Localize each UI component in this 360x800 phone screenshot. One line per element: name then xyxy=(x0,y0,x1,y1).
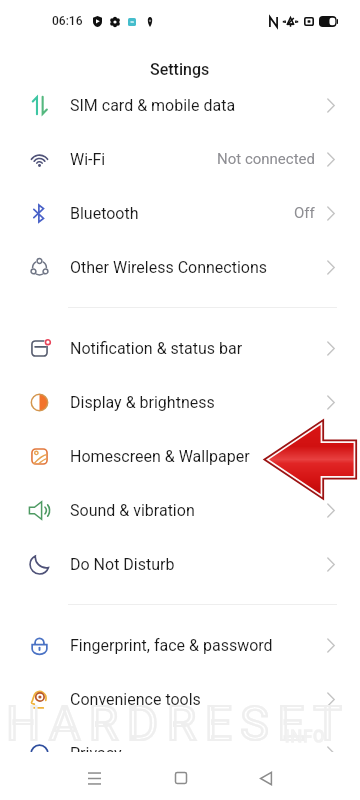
button[interactable]: Sound & vibration xyxy=(0,483,360,537)
staticText: Sound & vibration xyxy=(70,501,195,520)
button[interactable]: Privacy xyxy=(0,726,360,780)
button[interactable]: Convenience tools xyxy=(0,672,360,726)
button[interactable]: Recent apps xyxy=(70,756,118,800)
staticText: Not connected xyxy=(217,150,315,168)
staticText: Notification & status bar xyxy=(70,339,243,358)
button[interactable]: Fingerprint, face & password xyxy=(0,618,360,672)
staticText: Homescreen & Wallpaper xyxy=(70,447,250,466)
staticText: 06:16 xyxy=(52,14,83,28)
staticText: INFO xyxy=(285,727,326,746)
button[interactable]: Back xyxy=(242,756,290,800)
button[interactable]: Wi-Fi xyxy=(0,132,360,186)
button[interactable]: SIM card & mobile data xyxy=(0,78,360,132)
staticText: HARDRESET xyxy=(6,695,351,751)
staticText: Wi-Fi xyxy=(70,150,106,169)
button[interactable]: Other Wireless Connections xyxy=(0,240,360,294)
staticText: Convenience tools xyxy=(70,690,201,709)
button[interactable]: Do Not Disturb xyxy=(0,537,360,591)
staticText: Settings xyxy=(150,60,210,78)
staticText: Bluetooth xyxy=(70,204,139,223)
button[interactable]: Bluetooth xyxy=(0,186,360,240)
staticText: Off xyxy=(294,204,315,222)
staticText: Do Not Disturb xyxy=(70,555,175,574)
button[interactable]: Notification & status bar xyxy=(0,321,360,375)
staticText: SIM card & mobile data xyxy=(70,96,236,115)
button[interactable]: Home xyxy=(157,756,205,800)
button[interactable]: Display & brightness xyxy=(0,375,360,429)
staticText: Privacy xyxy=(70,744,122,763)
staticText: Other Wireless Connections xyxy=(70,258,268,277)
button[interactable]: Homescreen & Wallpaper xyxy=(0,429,360,483)
staticText: Display & brightness xyxy=(70,393,215,412)
staticText: Fingerprint, face & password xyxy=(70,636,273,655)
